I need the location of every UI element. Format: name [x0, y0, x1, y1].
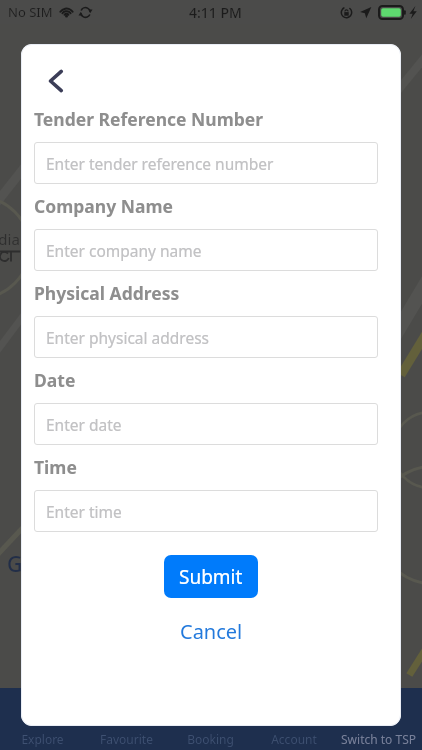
- staticText: Enter physical address: [46, 327, 210, 348]
- staticText: Time: [34, 455, 77, 479]
- button[interactable]: Cancel: [162, 614, 261, 649]
- staticText: Booking: [187, 731, 234, 747]
- button[interactable]: Account: [252, 688, 336, 750]
- button[interactable]: Explore: [0, 688, 84, 750]
- button[interactable]: Enter tender reference number: [34, 142, 378, 184]
- staticText: Cancel: [180, 618, 243, 645]
- staticText: Company Name: [34, 194, 173, 218]
- staticText: G: [7, 550, 23, 579]
- button[interactable]: Enter company name: [34, 229, 378, 271]
- staticText: 4:11 PM: [189, 3, 242, 22]
- staticText: Date: [34, 368, 76, 392]
- button[interactable]: Back: [36, 61, 76, 101]
- button[interactable]: Favourite: [84, 688, 168, 750]
- staticText: Favourite: [100, 731, 153, 747]
- staticText: Physical Address: [34, 281, 180, 305]
- staticText: Tender Reference Number: [34, 107, 264, 131]
- button[interactable]: Booking: [168, 688, 252, 750]
- button[interactable]: Enter time: [34, 490, 378, 532]
- button[interactable]: Switch to TSP: [336, 688, 420, 750]
- button[interactable]: Enter physical address: [34, 316, 378, 358]
- staticText: Switch to TSP: [341, 731, 416, 747]
- staticText: Account: [271, 731, 317, 747]
- staticText: Enter tender reference number: [46, 153, 274, 174]
- staticText: India: [0, 229, 20, 249]
- staticText: Enter company name: [46, 240, 202, 261]
- staticText: No SIM: [8, 3, 53, 21]
- staticText: Explore: [21, 731, 64, 747]
- button[interactable]: Enter date: [34, 403, 378, 445]
- staticText: Submit: [179, 564, 243, 590]
- staticText: Enter date: [46, 414, 122, 435]
- staticText: Enter time: [46, 501, 122, 522]
- button[interactable]: Submit: [164, 555, 258, 598]
